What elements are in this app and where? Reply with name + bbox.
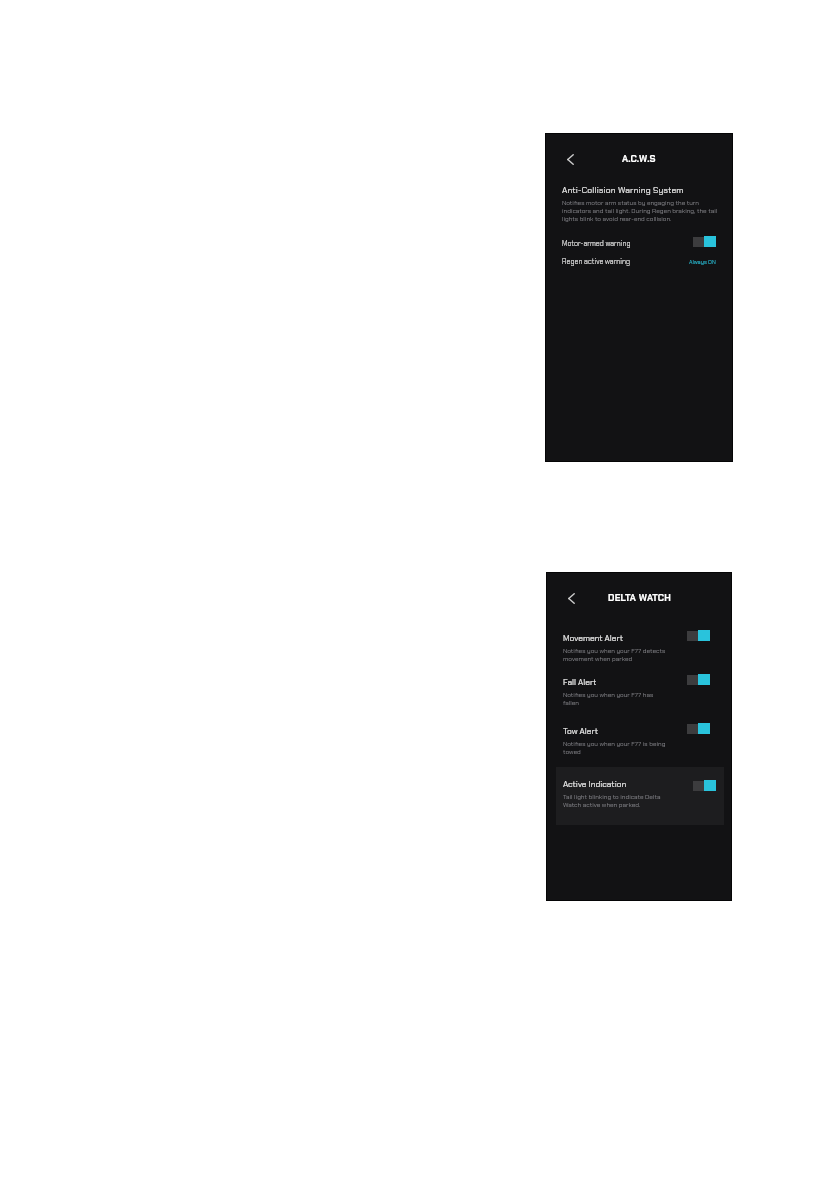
button[interactable]: Toggle switch, on	[687, 674, 710, 685]
button[interactable]: Toggle switch, on	[693, 780, 716, 791]
staticText: Fall Alert	[563, 677, 597, 688]
staticText: Tow Alert	[563, 726, 598, 737]
button[interactable]: Tow Alert	[547, 726, 731, 756]
button[interactable]: Fall Alert	[547, 677, 731, 707]
button[interactable]: Toggle switch, on	[693, 236, 716, 247]
staticText: Notifies you when your F77 has fallen	[563, 691, 669, 707]
staticText: Regen active warning	[562, 257, 631, 266]
button[interactable]: Movement Alert	[547, 633, 731, 663]
button[interactable]: Back	[561, 588, 581, 608]
staticText: DELTA WATCH	[608, 592, 671, 604]
button[interactable]: Back	[560, 149, 580, 169]
staticText: A.C.W.S	[622, 153, 656, 165]
staticText: Anti-Collision Warning System	[562, 185, 684, 196]
button[interactable]: Active Indication	[556, 767, 724, 825]
staticText: Movement Alert	[563, 633, 623, 644]
staticText: Notifies you when your F77 detects movem…	[563, 647, 669, 663]
staticText: Tail light blinking to indicate Delta Wa…	[563, 793, 669, 809]
staticText: Always ON	[689, 258, 716, 265]
staticText: Notifies motor arm status by engaging th…	[562, 199, 718, 223]
button[interactable]: Toggle switch, on	[687, 630, 710, 641]
button[interactable]: Toggle switch, on	[687, 723, 710, 734]
staticText: Notifies you when your F77 is being towe…	[563, 740, 669, 756]
staticText: Motor-armed warning	[562, 239, 631, 248]
staticText: Active Indication	[563, 779, 627, 790]
